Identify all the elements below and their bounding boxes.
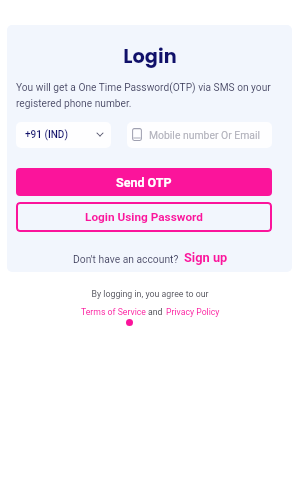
staticText: Mobile number Or Email xyxy=(149,129,260,141)
staticText: Don't have an account? xyxy=(73,253,179,265)
staticText: By logging in, you agree to our xyxy=(0,289,300,299)
button[interactable]: Mobile number or email xyxy=(127,122,272,148)
button[interactable]: Privacy Policy xyxy=(166,307,220,317)
button[interactable]: Send OTP xyxy=(16,168,272,196)
staticText: Sign up xyxy=(184,250,228,265)
staticText: Login Using Password xyxy=(85,210,203,224)
staticText: Privacy Policy xyxy=(166,307,220,317)
other: Mobile number or email xyxy=(132,128,142,141)
staticText: +91 (IND) xyxy=(25,129,68,141)
other: Select country code xyxy=(97,133,103,136)
other: Page indicator xyxy=(126,319,133,326)
button[interactable]: Login Using Password xyxy=(16,202,272,232)
staticText: and xyxy=(148,307,163,317)
button[interactable]: +91 (IND) xyxy=(16,122,111,148)
staticText: Send OTP xyxy=(116,175,172,190)
staticText: Login xyxy=(0,43,300,70)
staticText: Terms of Service xyxy=(81,307,146,317)
button[interactable]: Terms of Service xyxy=(81,307,146,317)
staticText: You will get a One Time Password(OTP) vi… xyxy=(16,82,276,109)
button[interactable]: Sign up xyxy=(184,250,228,265)
